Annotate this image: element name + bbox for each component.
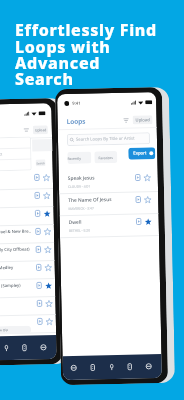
staticText: Promises Of God Only City Offbeat): [0, 247, 30, 254]
button[interactable]: Upload: [33, 125, 48, 134]
button[interactable]: Play: [33, 191, 41, 199]
button[interactable]: The Name Of Jesus: [59, 192, 158, 215]
button[interactable]: Export: [128, 147, 155, 160]
button[interactable]: Favorite: [43, 245, 51, 253]
button[interactable]: Hosanna Christ Is Israel & New Bre..: [0, 225, 54, 244]
button[interactable]: Play: [135, 217, 143, 226]
button[interactable]: Favorite: [143, 173, 151, 181]
button[interactable]: Recently Played: [67, 151, 91, 164]
staticText: Recently Played: [67, 155, 91, 161]
button[interactable]: Play: [35, 299, 44, 307]
button[interactable]: Loops: [122, 359, 138, 375]
button[interactable]: Select: [0, 136, 32, 172]
button[interactable]: Favorites: [94, 151, 117, 163]
button[interactable]: Dwell: [60, 214, 159, 237]
staticText: MAVERICK - 3:47: [68, 205, 94, 210]
button[interactable]: Favorite: [42, 173, 50, 181]
button[interactable]: Favorite: [42, 191, 50, 199]
staticText: Export: [133, 150, 147, 157]
staticText: Search: [36, 161, 46, 165]
button[interactable]: Home: [66, 360, 82, 376]
button[interactable]: Favorite: [44, 281, 52, 289]
staticText: Search Loops By Title or Artist: [76, 136, 135, 143]
button[interactable]: Way Maker: [0, 171, 53, 190]
staticText: Dwell: [69, 219, 82, 226]
staticText: Hosanna Christ Is Israel & New Bre..: [0, 229, 31, 236]
button[interactable]: Favorite: [45, 317, 53, 325]
staticText: Great Are You Lord Medley: [0, 265, 14, 272]
staticText: Favorites: [98, 155, 113, 160]
button[interactable]: Favorite: [144, 217, 152, 225]
button[interactable]: Goodness: [0, 189, 53, 208]
button[interactable]: Speak Jesus: [59, 170, 158, 193]
staticText: Speak Jesus: [68, 174, 95, 182]
button[interactable]: Great Are You Lord Medley: [0, 261, 55, 280]
button[interactable]: Sort: [122, 117, 130, 124]
staticText: Effortlessly Find Loops with Advanced Se…: [15, 19, 157, 90]
button[interactable]: Favorite: [42, 209, 51, 217]
button[interactable]: Profile: [35, 339, 52, 355]
button[interactable]: Play: [36, 317, 44, 325]
button[interactable]: Search Loops By Title or Artist: [67, 132, 150, 146]
button[interactable]: Play: [34, 227, 42, 235]
button[interactable]: Record: [0, 340, 15, 356]
button[interactable]: Promises Of God Only City Offbeat): [0, 243, 55, 262]
button[interactable]: Favorite: [143, 195, 151, 203]
staticText: Added to New Clip: [0, 328, 8, 333]
staticText: Upload: [35, 127, 47, 132]
button[interactable]: Upload: [132, 115, 153, 125]
button[interactable]: Worthy Of It All Live (Sampley): [0, 279, 55, 298]
button[interactable]: Holy Forever: [0, 207, 54, 226]
button[interactable]: Play: [35, 263, 43, 271]
staticText: 9:41: [72, 101, 81, 107]
button[interactable]: Sort: [23, 127, 30, 134]
button[interactable]: Favorite: [43, 227, 51, 235]
button[interactable]: Favorite: [44, 263, 52, 271]
staticText: BETHEL - 5:20: [69, 227, 91, 232]
button[interactable]: Play: [134, 195, 142, 204]
button[interactable]: Added to New Clip: [0, 326, 31, 335]
staticText: Worthy Of It All Live (Sampley): [0, 283, 21, 290]
staticText: Select: [0, 152, 2, 156]
button[interactable]: Record: [104, 359, 120, 375]
button[interactable]: Favorite: [44, 299, 53, 307]
staticText: CLOUD9 - 4:01: [68, 183, 91, 188]
button[interactable]: Play: [34, 245, 42, 253]
staticText: Upload: [135, 117, 151, 123]
staticText: The Name Of Jesus: [68, 196, 112, 204]
button[interactable]: Profile: [141, 358, 157, 374]
button[interactable]: Search: [35, 159, 46, 166]
button[interactable]: Loops: [16, 340, 33, 356]
button[interactable]: Firm Found: [0, 297, 56, 316]
button[interactable]: Play: [35, 281, 43, 289]
button[interactable]: Play: [33, 209, 42, 217]
button[interactable]: Play: [33, 173, 41, 181]
button[interactable]: Library: [85, 359, 101, 376]
staticText: Loops: [66, 117, 86, 126]
button[interactable]: Play: [134, 173, 142, 182]
button[interactable]: Praise: [0, 315, 56, 334]
